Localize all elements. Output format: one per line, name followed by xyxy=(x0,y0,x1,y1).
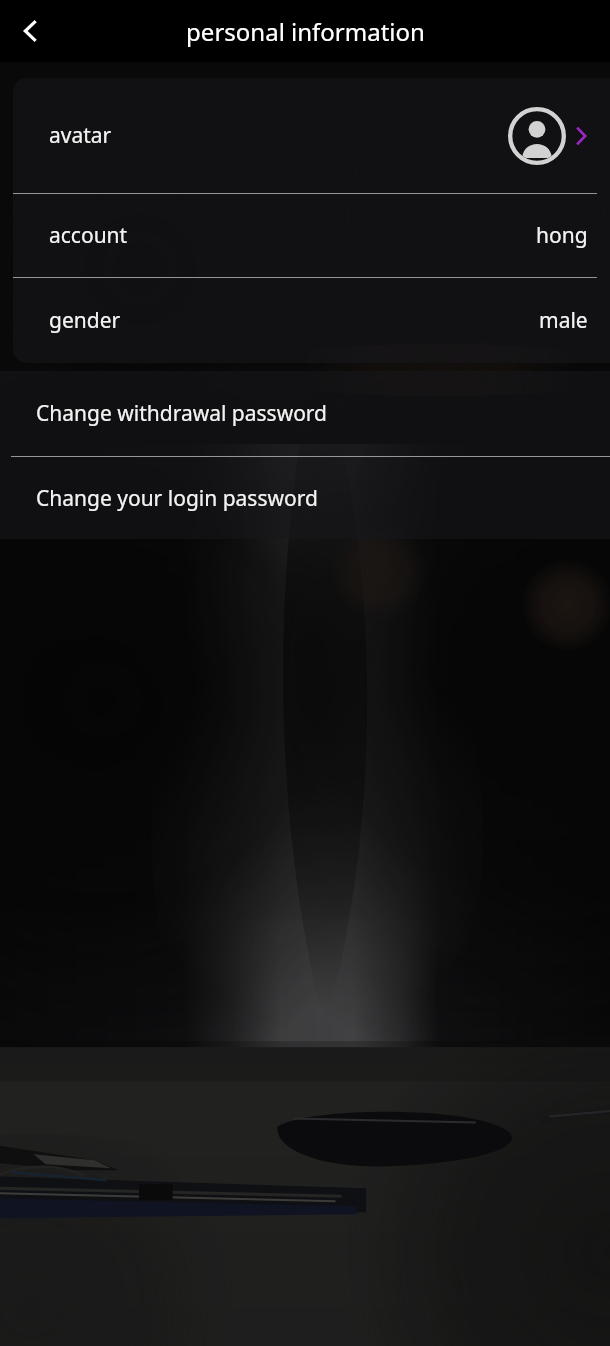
staticText: hong xyxy=(536,221,588,250)
button[interactable]: account xyxy=(13,194,610,277)
staticText: account xyxy=(49,221,128,250)
staticText: Change withdrawal password xyxy=(36,399,328,428)
staticText: male xyxy=(539,306,588,335)
button[interactable]: gender xyxy=(13,278,610,363)
staticText: Change your login password xyxy=(36,484,318,513)
button[interactable]: Change withdrawal password xyxy=(0,371,610,456)
button[interactable]: Back xyxy=(0,0,62,62)
staticText: avatar xyxy=(49,121,112,150)
staticText: gender xyxy=(49,306,121,335)
button[interactable]: Change your login password xyxy=(0,457,610,539)
button[interactable]: avatar xyxy=(13,78,610,193)
staticText: personal information xyxy=(186,15,425,48)
